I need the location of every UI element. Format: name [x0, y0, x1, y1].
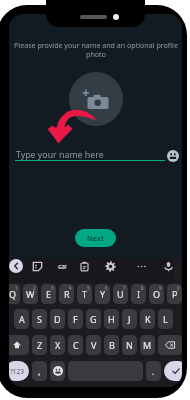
button[interactable]: Settings: [105, 261, 116, 272]
staticText: G: [90, 313, 97, 325]
staticText: 4: [69, 285, 72, 291]
staticText: ?123: [10, 367, 24, 376]
button[interactable]: G: [86, 309, 101, 329]
staticText: H: [108, 313, 115, 325]
staticText: 8: [141, 285, 144, 291]
staticText: S: [37, 313, 42, 325]
staticText: Z: [37, 339, 43, 351]
button[interactable]: Emoji: [167, 150, 179, 162]
button[interactable]: [9, 335, 29, 355]
staticText: E: [46, 288, 52, 300]
button[interactable]: [50, 361, 65, 381]
button[interactable]: H: [104, 309, 119, 329]
staticText: J: [128, 313, 131, 325]
button[interactable]: Clipboard: [79, 261, 90, 272]
button[interactable]: C: [68, 335, 83, 355]
staticText: V: [91, 339, 97, 351]
staticText: Next: [87, 233, 104, 243]
staticText: K: [145, 313, 151, 325]
button[interactable]: T: [77, 284, 92, 304]
staticText: F: [73, 313, 78, 325]
staticText: B: [109, 339, 115, 351]
staticText: C: [73, 339, 79, 351]
button[interactable]: L: [158, 309, 173, 329]
button[interactable]: D: [50, 309, 65, 329]
staticText: N: [126, 339, 133, 351]
button[interactable]: X: [50, 335, 65, 355]
button[interactable]: Z: [32, 335, 47, 355]
button[interactable]: [164, 361, 182, 381]
staticText: 2: [33, 285, 36, 291]
button[interactable]: Y: [95, 284, 110, 304]
button[interactable]: K: [140, 309, 155, 329]
button[interactable]: Back: [9, 259, 23, 273]
staticText: 6: [105, 285, 108, 291]
staticText: Type your name here: [16, 149, 104, 161]
staticText: .: [152, 365, 155, 377]
button[interactable]: J: [122, 309, 137, 329]
staticText: D: [54, 313, 61, 325]
staticText: Please provide your name and an optional…: [14, 40, 178, 59]
staticText: A: [19, 313, 25, 325]
button[interactable]: Q: [9, 284, 20, 304]
staticText: 3: [51, 285, 54, 291]
staticText: X: [55, 339, 61, 351]
button[interactable]: ,: [32, 361, 47, 381]
staticText: M: [143, 339, 152, 351]
staticText: Q: [9, 288, 17, 300]
button[interactable]: A: [14, 309, 29, 329]
staticText: L: [163, 313, 168, 325]
staticText: U: [117, 288, 124, 300]
staticText: 7: [123, 285, 126, 291]
staticText: O: [153, 288, 161, 300]
button[interactable]: More options: [136, 261, 147, 272]
button[interactable]: U: [113, 284, 128, 304]
button[interactable]: Stickers: [32, 261, 43, 272]
button[interactable]: S: [32, 309, 47, 329]
button[interactable]: ?123: [9, 361, 29, 381]
staticText: 0: [177, 285, 180, 291]
button[interactable]: B: [104, 335, 119, 355]
button[interactable]: N: [122, 335, 137, 355]
button[interactable]: E: [41, 284, 56, 304]
button[interactable]: Voice input: [163, 261, 174, 272]
button[interactable]: F: [68, 309, 83, 329]
button[interactable]: .: [146, 361, 161, 381]
button[interactable]: V: [86, 335, 101, 355]
staticText: P: [172, 288, 178, 300]
button[interactable]: M: [140, 335, 155, 355]
button[interactable]: R: [59, 284, 74, 304]
staticText: R: [64, 288, 70, 300]
button[interactable]: Add profile photo: [69, 72, 123, 126]
staticText: ,: [38, 365, 41, 377]
staticText: I: [137, 288, 141, 300]
staticText: Y: [100, 288, 106, 300]
staticText: 5: [87, 285, 90, 291]
button[interactable]: GIF: [56, 262, 70, 271]
button[interactable]: I: [131, 284, 146, 304]
button[interactable]: Next: [75, 229, 116, 247]
staticText: 9: [159, 285, 162, 291]
button[interactable]: O: [149, 284, 164, 304]
button[interactable]: P: [167, 284, 182, 304]
staticText: GIF: [58, 263, 68, 270]
button[interactable]: [158, 335, 182, 355]
staticText: 1: [15, 285, 18, 291]
staticText: T: [82, 288, 88, 300]
button[interactable]: W: [23, 284, 38, 304]
staticText: W: [26, 288, 35, 300]
